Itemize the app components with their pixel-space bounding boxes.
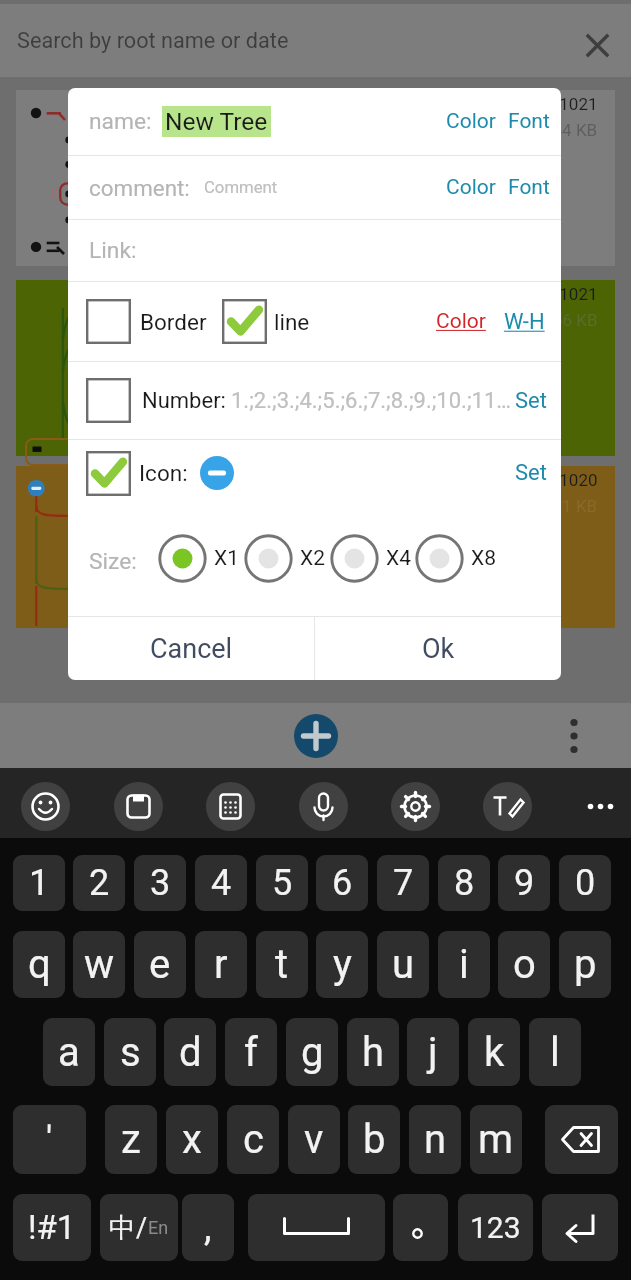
button[interactable]: Color xyxy=(446,175,496,200)
button[interactable]: a xyxy=(43,1018,95,1086)
button[interactable]: Color xyxy=(436,309,486,334)
button[interactable]: q xyxy=(13,931,65,998)
button[interactable]: 5 xyxy=(256,855,308,911)
button[interactable]: Period xyxy=(393,1194,448,1261)
button[interactable]: Unchecked xyxy=(86,299,131,344)
button[interactable]: 0 xyxy=(559,855,611,911)
button[interactable]: k xyxy=(468,1018,520,1086)
button[interactable]: Keyboard layout xyxy=(206,782,255,831)
button[interactable]: Link: xyxy=(68,220,561,281)
button[interactable]: Checked xyxy=(86,451,131,496)
staticText: l xyxy=(550,1029,560,1076)
button[interactable]: x xyxy=(166,1105,218,1174)
button[interactable]: Unchecked xyxy=(86,378,131,423)
button[interactable]: d xyxy=(164,1018,216,1086)
staticText: p xyxy=(574,941,597,988)
button[interactable]: e xyxy=(134,931,186,998)
staticText: e xyxy=(149,941,171,988)
button[interactable]: j xyxy=(407,1018,459,1086)
button[interactable]: 2024 10 21 1021 xyxy=(16,90,615,266)
button[interactable]: 3 xyxy=(134,855,186,911)
button[interactable]: b xyxy=(348,1105,400,1174)
button[interactable]: Checked xyxy=(222,299,267,344)
button[interactable]: 123 xyxy=(458,1194,533,1261)
button[interactable]: u xyxy=(377,931,429,998)
button[interactable]: 6 xyxy=(316,855,368,911)
staticText: g xyxy=(301,1029,324,1076)
button[interactable]: Icon preview xyxy=(200,456,234,490)
button[interactable]: Font xyxy=(508,175,550,200)
button[interactable]: Space xyxy=(248,1194,385,1261)
button[interactable]: m xyxy=(470,1105,522,1174)
button[interactable]: f xyxy=(225,1018,277,1086)
button[interactable]: v xyxy=(288,1105,340,1174)
button[interactable]: !#1 xyxy=(13,1194,91,1261)
staticText: 2024 10 21 1021 xyxy=(466,284,598,304)
staticText: 171 KB xyxy=(543,496,598,516)
button[interactable]: 8 xyxy=(438,855,490,911)
button[interactable]: More options xyxy=(554,716,594,756)
button[interactable]: Voice input xyxy=(299,782,348,831)
button[interactable]: w xyxy=(73,931,125,998)
button[interactable]: 7 xyxy=(377,855,429,911)
button[interactable]: y xyxy=(316,931,368,998)
staticText: 中/ xyxy=(109,1211,148,1245)
button[interactable]: Size X1 xyxy=(158,534,239,583)
button[interactable]: i xyxy=(438,931,490,998)
button[interactable]: Handwriting xyxy=(483,782,532,831)
button[interactable]: s xyxy=(104,1018,156,1086)
button[interactable]: r xyxy=(195,931,247,998)
staticText: 354 KB xyxy=(543,120,598,140)
button[interactable]: More xyxy=(576,782,625,831)
button[interactable]: g xyxy=(286,1018,338,1086)
button[interactable]: p xyxy=(559,931,611,998)
button[interactable]: Settings xyxy=(391,782,440,831)
button[interactable]: n xyxy=(409,1105,461,1174)
button[interactable]: 2 xyxy=(73,855,125,911)
staticText: s xyxy=(120,1029,141,1076)
staticText: y xyxy=(333,941,352,988)
button[interactable]: Size X4 xyxy=(330,534,411,583)
button[interactable]: o xyxy=(498,931,550,998)
button[interactable]: Clipboard xyxy=(114,782,163,831)
button[interactable]: h xyxy=(347,1018,399,1086)
button[interactable]: Switch language xyxy=(100,1194,178,1261)
button[interactable]: Color xyxy=(446,109,496,134)
button[interactable]: 1 xyxy=(13,855,65,911)
button[interactable]: Size X2 xyxy=(244,534,325,583)
button[interactable]: Enter xyxy=(542,1194,618,1261)
button[interactable]: Backspace xyxy=(545,1105,618,1174)
button[interactable]: Size X8 xyxy=(415,534,496,583)
button[interactable]: Font xyxy=(508,109,550,134)
staticText: h xyxy=(362,1029,385,1076)
button[interactable]: l xyxy=(529,1018,581,1086)
staticText: v xyxy=(304,1116,324,1163)
button[interactable]: z xyxy=(105,1105,157,1174)
staticText: 56 KB xyxy=(553,310,598,330)
staticText: 4 xyxy=(211,862,232,904)
staticText: f xyxy=(244,1029,258,1076)
staticText: a xyxy=(58,1029,80,1076)
button[interactable]: Set xyxy=(515,460,547,486)
button[interactable]: Add xyxy=(294,714,338,758)
staticText: X1 xyxy=(214,546,239,571)
button[interactable]: 2024 10 21 1021 xyxy=(16,280,615,456)
staticText: X4 xyxy=(386,546,411,571)
button[interactable]: Emoji xyxy=(21,782,70,831)
button[interactable]: 9 xyxy=(498,855,550,911)
button[interactable]: ' xyxy=(13,1105,86,1174)
button[interactable]: Search by root name or date xyxy=(0,4,631,77)
button[interactable]: 2024 10 21 1020 xyxy=(16,466,615,628)
button[interactable]: 4 xyxy=(195,855,247,911)
button[interactable]: Cancel xyxy=(68,617,314,680)
button[interactable]: c xyxy=(227,1105,279,1174)
button[interactable]: Close search xyxy=(579,27,616,64)
staticText: m xyxy=(478,1116,514,1163)
button[interactable]: Ok xyxy=(315,617,561,680)
staticText: Cancel xyxy=(150,633,233,665)
button[interactable]: , xyxy=(182,1194,234,1261)
button[interactable]: W-H xyxy=(504,309,545,335)
staticText: 7 xyxy=(393,862,414,904)
button[interactable]: t xyxy=(256,931,308,998)
button[interactable]: Set xyxy=(515,388,547,414)
